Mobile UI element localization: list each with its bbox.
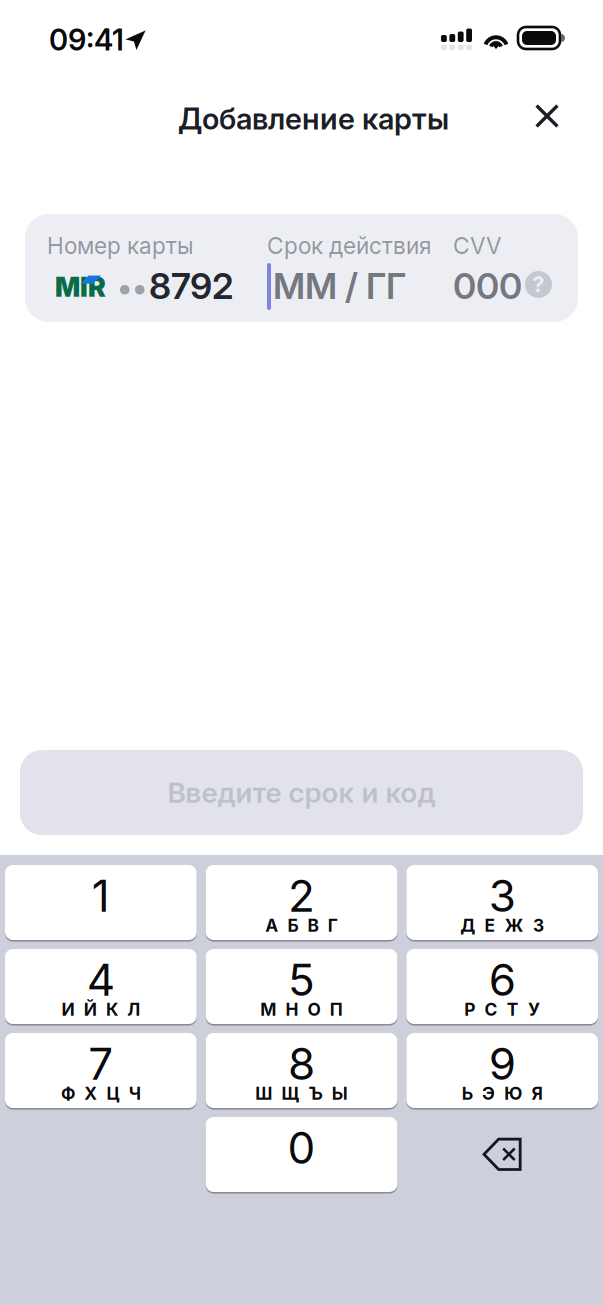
staticText: 9 bbox=[489, 1037, 516, 1090]
button[interactable]: 8 bbox=[206, 1033, 397, 1108]
button[interactable]: 6 bbox=[406, 949, 598, 1024]
staticText: Ь Э Ю Я bbox=[462, 1083, 542, 1104]
staticText: Ш Щ Ъ Ы bbox=[255, 1083, 348, 1104]
button[interactable]: Закрыть bbox=[518, 87, 576, 145]
staticText: 1 bbox=[92, 869, 110, 922]
button[interactable]: 7 bbox=[5, 1033, 197, 1108]
staticText: ? bbox=[532, 272, 544, 297]
button[interactable]: 0 bbox=[206, 1117, 397, 1192]
staticText: 3 bbox=[489, 869, 516, 922]
staticText: 7 bbox=[88, 1037, 113, 1090]
button[interactable]: Введите срок и код bbox=[20, 750, 583, 835]
staticText: 2 bbox=[288, 869, 315, 922]
staticText: Номер карты bbox=[47, 232, 193, 259]
staticText: 5 bbox=[288, 953, 315, 1006]
button[interactable]: 3 bbox=[406, 865, 598, 940]
button[interactable]: 1 bbox=[5, 865, 197, 940]
staticText: 09:41 bbox=[49, 22, 124, 57]
staticText: CVV bbox=[453, 232, 501, 259]
button[interactable]: 2 bbox=[206, 865, 397, 940]
staticText: Р С Т У bbox=[464, 999, 540, 1020]
staticText: 4 bbox=[87, 953, 115, 1006]
staticText: 000 bbox=[453, 264, 522, 308]
staticText: 0 bbox=[287, 1121, 315, 1174]
button[interactable]: Удалить bbox=[406, 1117, 598, 1192]
staticText: Добавление карты bbox=[178, 101, 449, 136]
staticText: Ф Х Ц Ч bbox=[61, 1083, 141, 1104]
staticText: Введите срок и код bbox=[167, 776, 435, 809]
staticText: ММ / ГГ bbox=[273, 264, 406, 308]
staticText: М Н О П bbox=[260, 999, 343, 1020]
staticText: Срок действия bbox=[267, 232, 431, 259]
button[interactable]: 5 bbox=[206, 949, 397, 1024]
staticText: Д Е Ж З bbox=[460, 915, 544, 936]
staticText: 6 bbox=[489, 953, 516, 1006]
staticText: MIR bbox=[55, 271, 106, 303]
button[interactable]: 4 bbox=[5, 949, 197, 1024]
staticText: И Й К Л bbox=[61, 999, 140, 1020]
staticText: 8792 bbox=[149, 264, 233, 308]
button[interactable]: 9 bbox=[406, 1033, 598, 1108]
staticText: 8 bbox=[288, 1037, 315, 1090]
staticText: А Б В Г bbox=[265, 915, 338, 936]
